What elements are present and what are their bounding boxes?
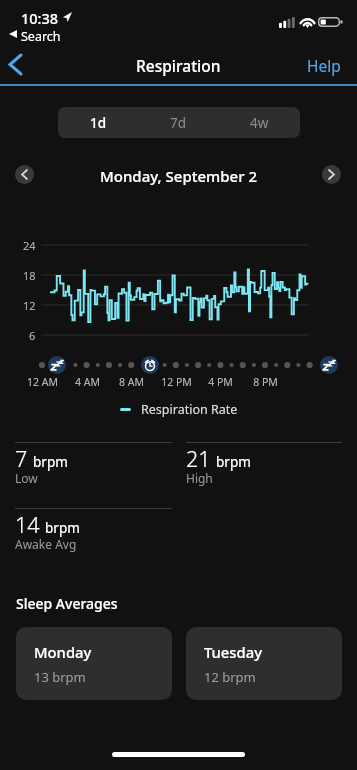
staticText: 1d (90, 114, 107, 132)
staticText: 8 PM (253, 375, 278, 389)
button[interactable]: 1d (58, 107, 138, 138)
staticText: 12 PM (161, 375, 192, 389)
staticText: 12 brpm (204, 668, 256, 686)
staticText: 21 (186, 444, 211, 473)
staticText: 6 (29, 328, 36, 343)
staticText: Tuesday (204, 642, 262, 662)
staticText: Low (15, 470, 38, 486)
staticText: brpm (33, 453, 68, 471)
staticText: Monday, September 2 (100, 166, 257, 186)
staticText: Sleep Averages (16, 594, 118, 613)
staticText: 13 brpm (34, 668, 86, 686)
staticText: Monday (34, 642, 92, 662)
staticText: 14 (15, 510, 40, 539)
button[interactable]: 21 (186, 442, 342, 489)
button[interactable]: 14 (15, 508, 172, 555)
staticText: 12 (23, 298, 36, 313)
staticText: 12 AM (27, 375, 58, 389)
staticText: 8 AM (119, 375, 144, 389)
staticText: 4 PM (208, 375, 233, 389)
button[interactable]: 4w (219, 107, 300, 138)
staticText: 24 (23, 238, 36, 253)
staticText: 7 (15, 444, 28, 473)
staticText: 4 AM (75, 375, 100, 389)
button[interactable]: Sleep (48, 356, 66, 374)
button[interactable]: Sleep (320, 356, 338, 374)
button[interactable]: Alarm (141, 356, 159, 374)
staticText: brpm (216, 453, 251, 471)
staticText: Respiration Rate (141, 401, 238, 418)
staticText: High (186, 470, 213, 486)
staticText: Search (21, 28, 61, 45)
staticText: Respiration (136, 55, 221, 76)
staticText: brpm (45, 519, 80, 537)
button[interactable]: Next day (322, 165, 341, 184)
staticText: 18 (23, 268, 36, 283)
button[interactable]: 7 (15, 442, 172, 489)
staticText: Help (307, 55, 341, 76)
staticText: 10:38 (21, 8, 59, 28)
button[interactable]: Tuesday (186, 627, 342, 700)
button[interactable]: Help (291, 46, 357, 84)
button[interactable]: Previous day (15, 165, 34, 184)
button[interactable]: 7d (138, 107, 219, 138)
staticText: 4w (250, 114, 269, 132)
staticText: 7d (170, 114, 187, 132)
button[interactable]: Monday (16, 627, 172, 700)
staticText: Awake Avg (15, 536, 77, 552)
button[interactable]: Back (0, 45, 31, 83)
